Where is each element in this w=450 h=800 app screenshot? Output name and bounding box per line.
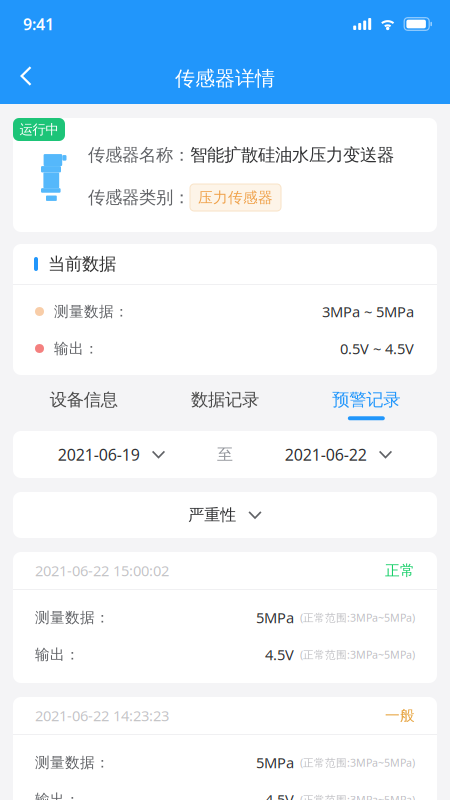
staticText: 严重性 [188, 505, 236, 525]
staticText: 2021-06-22 [285, 444, 367, 465]
staticText: 运行中 [19, 121, 58, 138]
staticText: 测量数据： [54, 302, 129, 320]
staticText: 至 [217, 445, 233, 464]
button[interactable]: 2021-06-22 [240, 431, 437, 478]
staticText: 预警记录 [332, 389, 400, 410]
staticText: 0.5V ~ 4.5V [340, 339, 414, 358]
staticText: 2021-06-22 15:00:02 [35, 561, 169, 580]
button[interactable]: 预警记录 [296, 375, 437, 431]
staticText: 一般 [385, 706, 415, 724]
staticText: 传感器类别： [88, 187, 190, 208]
staticText: 传感器名称： [88, 144, 190, 166]
staticText: 数据记录 [191, 389, 259, 410]
staticText: 设备信息 [50, 389, 118, 410]
button[interactable]: 设备信息 [13, 375, 154, 431]
staticText: 测量数据： [35, 608, 110, 626]
staticText: 4.5V [265, 645, 294, 664]
staticText: 测量数据： [35, 753, 110, 771]
staticText: (正常范围:3MPa~5MPa) [300, 755, 415, 770]
staticText: 输出： [54, 339, 99, 357]
staticText: 3MPa ~ 5MPa [322, 302, 414, 321]
staticText: 输出： [35, 790, 80, 800]
staticText: 智能扩散硅油水压力变送器 [190, 144, 394, 166]
button[interactable]: 2021-06-19 [13, 431, 210, 478]
staticText: 9:41 [23, 13, 54, 35]
staticText: 当前数据 [48, 253, 116, 275]
button[interactable]: 返回 [0, 48, 48, 104]
staticText: 输出： [35, 645, 80, 663]
button[interactable]: 严重性 [13, 492, 437, 538]
button[interactable]: 数据记录 [154, 375, 296, 431]
staticText: 2021-06-19 [58, 444, 140, 465]
staticText: 正常 [385, 561, 415, 579]
staticText: 压力传感器 [198, 188, 273, 206]
staticText: 传感器详情 [175, 66, 275, 91]
staticText: (正常范围:3MPa~5MPa) [300, 647, 415, 662]
staticText: 2021-06-22 14:23:23 [35, 706, 169, 725]
staticText: 4.5V [265, 790, 294, 800]
staticText: 5MPa [256, 753, 294, 772]
staticText: 5MPa [256, 608, 294, 627]
staticText: (正常范围:3MPa~5MPa) [300, 610, 415, 625]
staticText: (正常范围:3MPa~5MPa) [300, 792, 415, 800]
